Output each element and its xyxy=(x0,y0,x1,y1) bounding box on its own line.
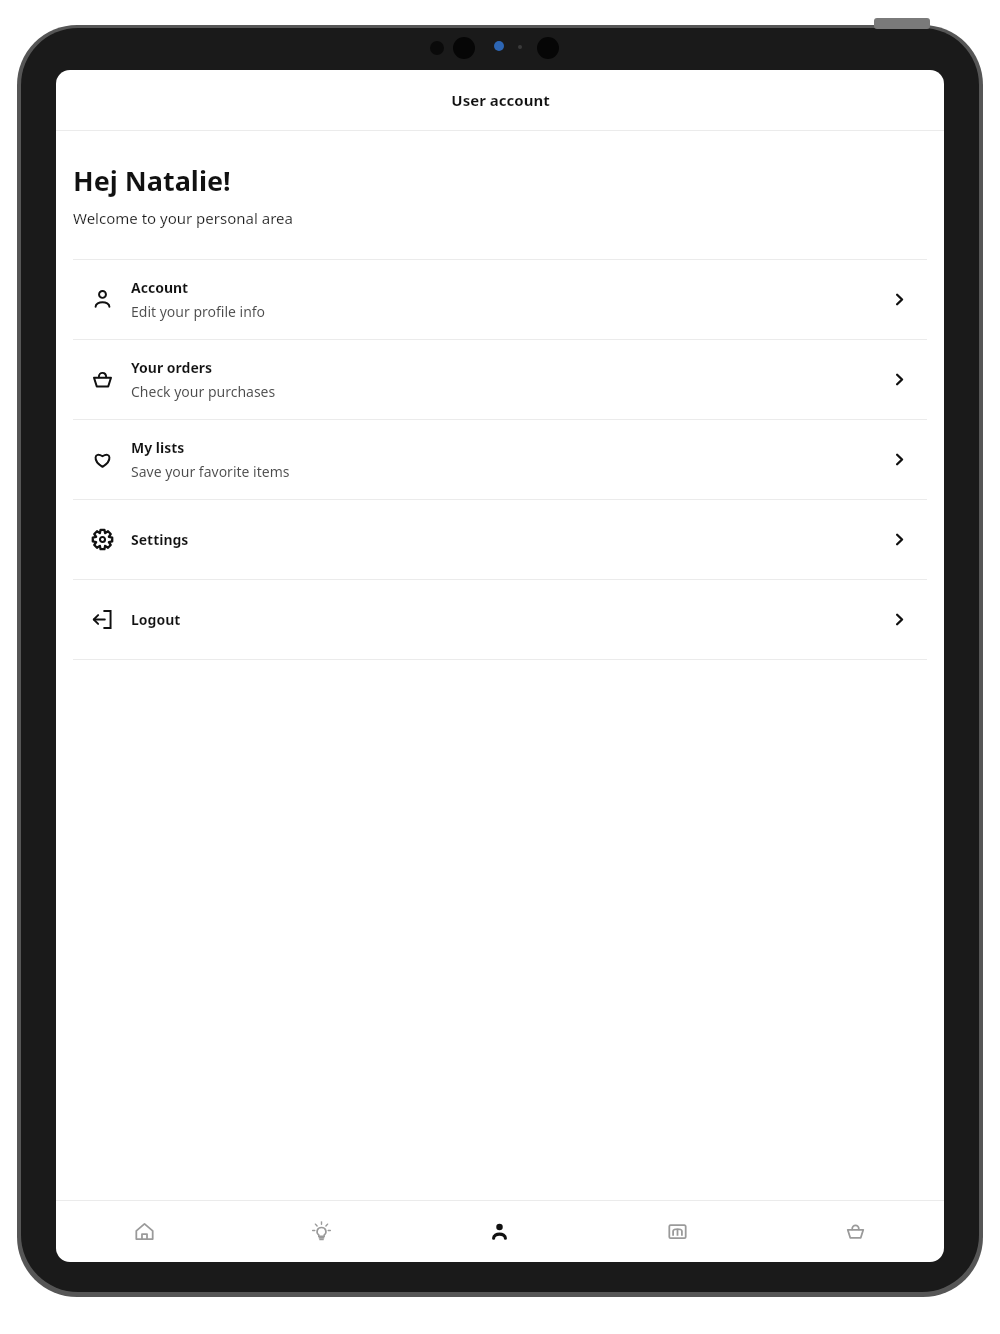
staticText: User account xyxy=(451,90,550,110)
staticText: Save your favorite items xyxy=(131,462,290,481)
button[interactable]: My lists xyxy=(73,420,927,499)
staticText: Logout xyxy=(131,610,181,629)
staticText: Settings xyxy=(131,530,189,549)
button[interactable]: Settings xyxy=(73,500,927,579)
staticText: Check your purchases xyxy=(131,382,276,401)
button[interactable]: Your orders xyxy=(73,340,927,419)
staticText: Your orders xyxy=(131,358,213,377)
button[interactable]: Shopping bag xyxy=(766,1201,944,1262)
staticText: Hej Natalie! xyxy=(73,162,231,199)
staticText: Welcome to your personal area xyxy=(73,208,293,228)
button[interactable]: Home xyxy=(56,1201,233,1262)
button[interactable]: Store xyxy=(588,1201,766,1262)
button[interactable]: Logout xyxy=(73,580,927,659)
staticText: Edit your profile info xyxy=(131,302,266,321)
staticText: My lists xyxy=(131,438,185,457)
staticText: Account xyxy=(131,278,189,297)
button[interactable]: Account xyxy=(73,260,927,339)
button[interactable]: Profile xyxy=(410,1201,588,1262)
button[interactable]: Ideas xyxy=(233,1201,410,1262)
